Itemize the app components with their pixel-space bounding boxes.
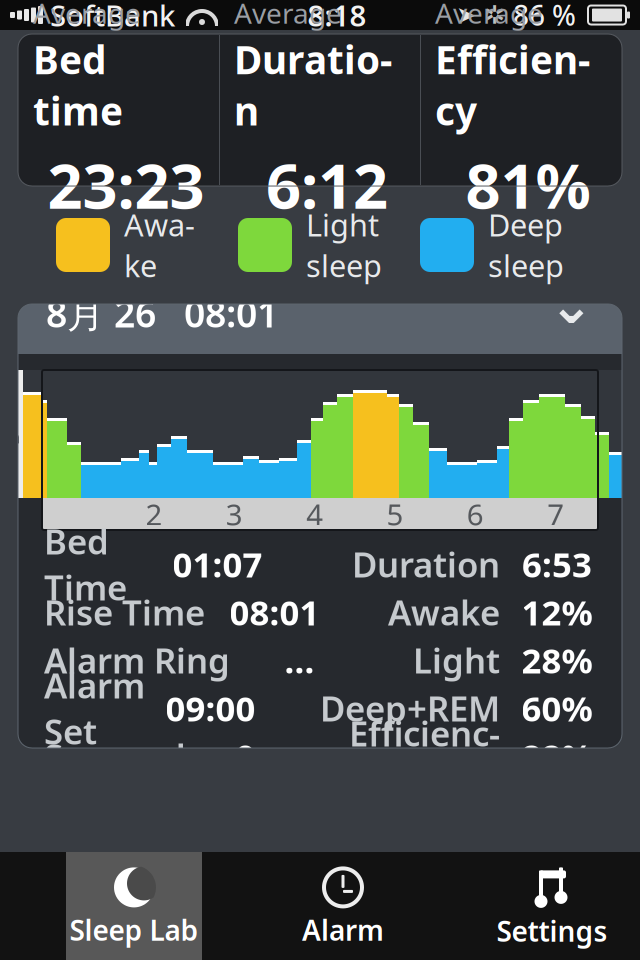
button[interactable]: Sleep Lab [66,852,202,960]
staticText: Deep [488,204,563,245]
staticText: sleep [488,245,564,286]
staticText: 2 [145,494,162,533]
staticText: Alarm Set [44,662,145,754]
staticText: Awake [124,204,195,286]
staticText: SLEEP DEPTH [1,322,23,545]
staticText: Bed Time [44,518,127,610]
button[interactable]: Settings [484,852,620,960]
staticText: Average [435,0,543,32]
button[interactable]: 8月 26 [18,272,622,354]
staticText: 0 [235,733,255,779]
staticText: 3 [226,494,243,533]
staticText: Light [413,637,500,683]
staticText: 4 [306,494,323,533]
staticText: 6:53 [522,541,592,587]
staticText: ✲ [484,1,505,29]
staticText: Alarm [302,911,384,949]
staticText: Efficiency [435,33,590,136]
staticText: 6:12 [266,144,388,226]
staticText: Bed time [33,33,123,136]
staticText: 28% [521,637,592,683]
staticText: Sleep Lab [69,911,198,949]
staticText: 8月 26 [46,288,156,338]
staticText: 23:23 [47,144,204,226]
staticText: 60% [521,685,592,731]
staticText: 8:18 [307,0,366,34]
staticText: 7 [547,494,564,533]
staticText: Duration [352,541,500,587]
staticText: Settings [496,912,607,950]
staticText: 6 [467,494,484,533]
staticText: Deep+REM [320,685,500,731]
staticText: Rise Time [44,589,205,635]
button[interactable]: Alarm [275,852,411,960]
staticText: Light [306,204,379,245]
staticText: Snoozed [44,733,186,779]
staticText: 81% [465,144,590,226]
staticText: ➤ [456,1,476,29]
staticText: 01:07 [172,541,262,587]
staticText: Alarm Ring [44,637,230,683]
staticText: ⌄ [549,275,594,335]
staticText: Awake [388,589,500,635]
staticText: 08:01 [229,589,319,635]
staticText: Average [33,0,141,32]
staticText: sleep [306,245,382,286]
staticText: 09:00 [165,685,255,731]
staticText: Efficiency [349,710,500,802]
staticText: 5 [386,494,403,533]
staticText: 88% [521,733,592,779]
staticText: ... [284,637,314,683]
staticText: 08:01 [184,288,278,338]
staticText: 12% [521,589,592,635]
staticText: 86 % [513,0,576,34]
staticText: Average [234,0,342,32]
staticText: Duration [234,33,392,136]
staticText: SoftBank [50,0,175,34]
